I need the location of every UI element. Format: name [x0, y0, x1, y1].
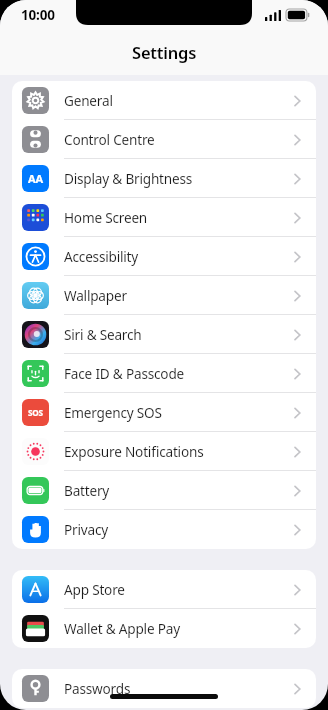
staticText: Privacy	[64, 520, 108, 539]
staticText: Passwords	[64, 679, 131, 698]
staticText: Siri & Search	[64, 325, 142, 344]
staticText: Settings	[132, 41, 197, 63]
staticText: 10:00	[21, 6, 55, 24]
button[interactable]: Wallet & Apple Pay	[12, 609, 316, 648]
button[interactable]: Home Screen	[12, 198, 316, 237]
staticText: Wallpaper	[64, 286, 127, 305]
button[interactable]: App Store	[12, 570, 316, 609]
staticText: SOS	[28, 407, 43, 418]
button[interactable]: Siri & Search	[12, 315, 316, 354]
other: Signal strength	[265, 10, 281, 21]
staticText: Battery	[64, 481, 110, 500]
button[interactable]: Passwords	[12, 669, 316, 708]
staticText: Accessibility	[64, 247, 139, 266]
button[interactable]: AA	[12, 159, 316, 198]
staticText: AA	[28, 171, 43, 186]
other: Battery	[286, 9, 310, 21]
button[interactable]: Face ID & Passcode	[12, 354, 316, 393]
staticText: Wallet & Apple Pay	[64, 619, 180, 638]
button[interactable]: Exposure Notifications	[12, 432, 316, 471]
button[interactable]: Wallpaper	[12, 276, 316, 315]
staticText: Face ID & Passcode	[64, 364, 185, 383]
button[interactable]: Battery	[12, 471, 316, 510]
staticText: Emergency SOS	[64, 403, 162, 422]
staticText: Control Centre	[64, 130, 155, 149]
staticText: Home Screen	[64, 208, 148, 227]
staticText: General	[64, 91, 113, 110]
staticText: Exposure Notifications	[64, 442, 204, 461]
staticText: Display & Brightness	[64, 169, 193, 188]
button[interactable]: Control Centre	[12, 120, 316, 159]
button[interactable]: General	[12, 81, 316, 120]
button[interactable]: Accessibility	[12, 237, 316, 276]
button[interactable]: Privacy	[12, 510, 316, 549]
button[interactable]: SOS	[12, 393, 316, 432]
staticText: App Store	[64, 580, 125, 599]
